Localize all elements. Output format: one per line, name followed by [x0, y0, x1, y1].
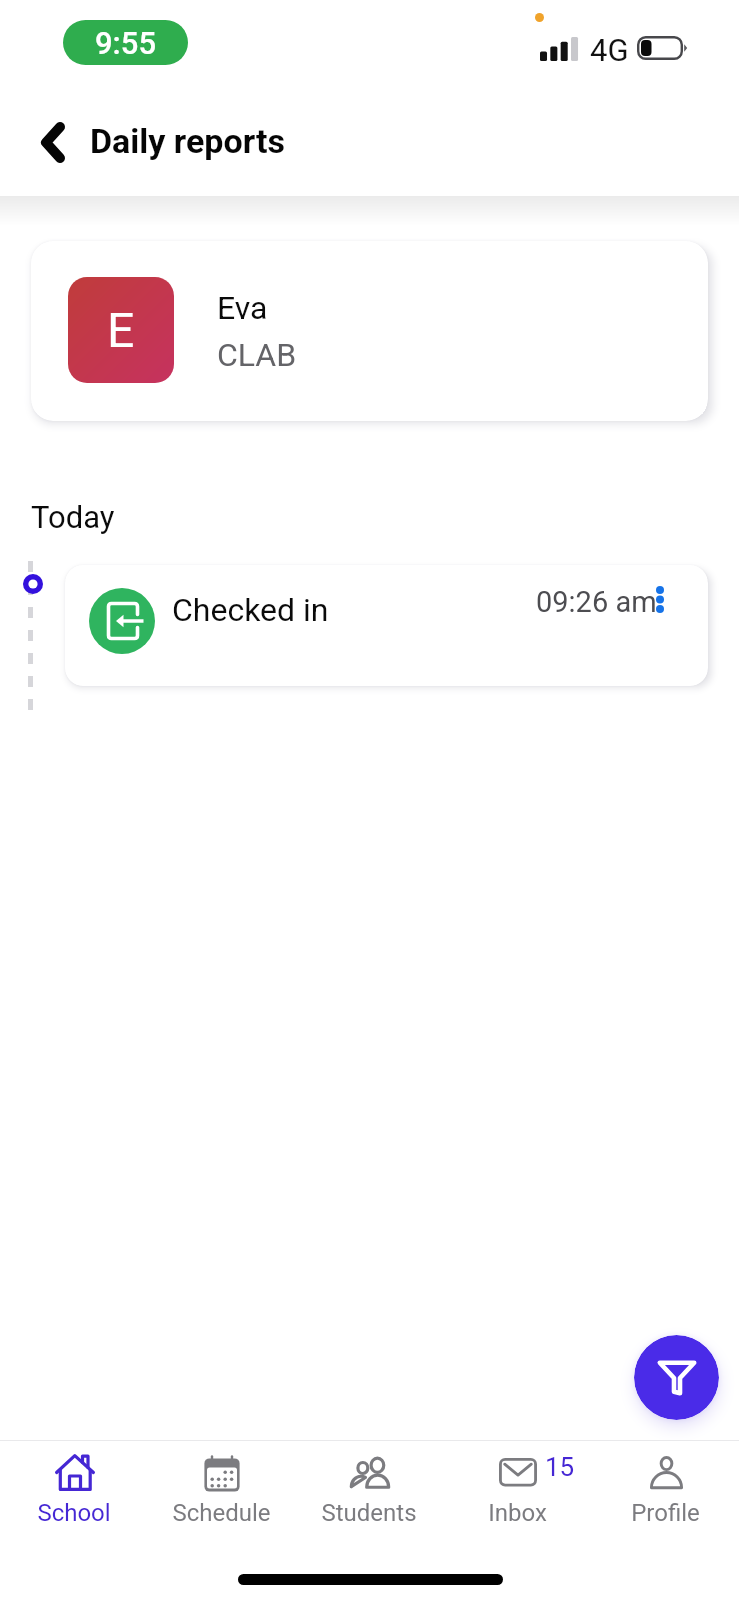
button[interactable]: E [31, 241, 708, 421]
staticText: CLAB [217, 336, 297, 374]
staticText: 15 [545, 1452, 575, 1482]
button[interactable]: Profile [591, 1441, 739, 1552]
staticText: Daily reports [90, 121, 285, 161]
staticText: 9:55 [95, 25, 157, 61]
button[interactable]: Checked in [65, 565, 708, 686]
staticText: Eva [217, 289, 268, 327]
button[interactable]: 15 [443, 1441, 591, 1552]
staticText: Checked in [172, 591, 329, 629]
staticText: School [37, 1499, 111, 1527]
staticText: Schedule [172, 1499, 271, 1527]
button[interactable]: Students [295, 1441, 443, 1552]
button[interactable]: School [0, 1441, 147, 1552]
button[interactable]: Schedule [147, 1441, 295, 1552]
staticText: 09:26 am [536, 585, 657, 619]
button[interactable]: Filter [634, 1335, 719, 1420]
staticText: 4G [590, 32, 629, 68]
staticText: E [107, 302, 135, 358]
button[interactable]: Back [24, 113, 82, 171]
button[interactable]: More options [639, 565, 681, 633]
staticText: Today [31, 499, 115, 535]
staticText: Profile [631, 1499, 700, 1527]
staticText: Students [321, 1499, 417, 1527]
staticText: Inbox [488, 1499, 547, 1527]
